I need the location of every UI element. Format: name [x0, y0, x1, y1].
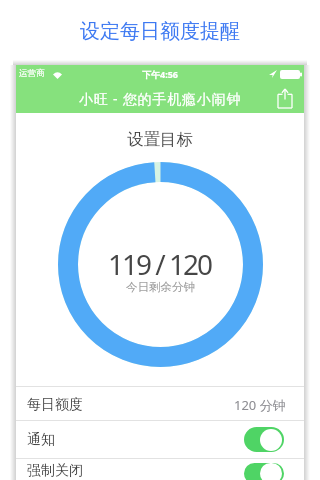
staticText: 119 / 120: [108, 245, 212, 283]
staticText: 运营商: [19, 68, 45, 79]
staticText: 120 分钟: [234, 396, 286, 414]
staticText: 通知: [27, 431, 55, 449]
staticText: 今日剩余分钟: [126, 280, 195, 294]
staticText: 每日额度: [27, 396, 83, 414]
button[interactable]: 强制关闭: [16, 459, 304, 480]
staticText: 强制关闭: [27, 462, 83, 480]
button[interactable]: [244, 427, 284, 452]
button[interactable]: [278, 89, 292, 108]
button[interactable]: 通知: [16, 421, 304, 458]
staticText: 小旺 - 您的手机瘾小闹钟: [79, 89, 242, 108]
staticText: 设定每日额度提醒: [80, 19, 240, 44]
staticText: 设置目标: [127, 129, 193, 150]
button[interactable]: [244, 463, 284, 480]
staticText: 下午4:56: [142, 68, 178, 80]
button[interactable]: 每日额度: [16, 388, 304, 421]
